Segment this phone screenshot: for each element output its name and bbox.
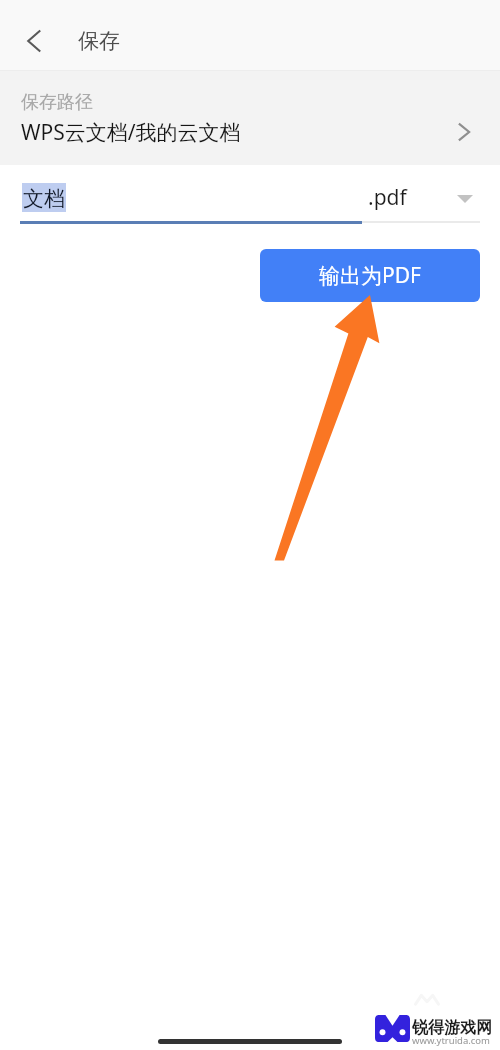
staticText: 文档 <box>23 186 65 212</box>
button[interactable]: 保存路径 <box>0 71 500 165</box>
staticText: 保存 <box>78 28 120 54</box>
staticText: 输出为PDF <box>319 261 421 290</box>
button[interactable]: 输出为PDF <box>260 249 480 302</box>
button[interactable]: File format .pdf <box>362 178 480 221</box>
button[interactable]: Back <box>11 18 57 64</box>
staticText: 锐得游戏网 <box>412 1018 492 1038</box>
button[interactable]: 文档 <box>20 175 362 221</box>
staticText: www.ytruida.com <box>412 1034 490 1047</box>
staticText: 保存路径 <box>21 91 93 114</box>
staticText: .pdf <box>368 183 407 212</box>
staticText: WPS云文档/我的云文档 <box>21 118 241 147</box>
